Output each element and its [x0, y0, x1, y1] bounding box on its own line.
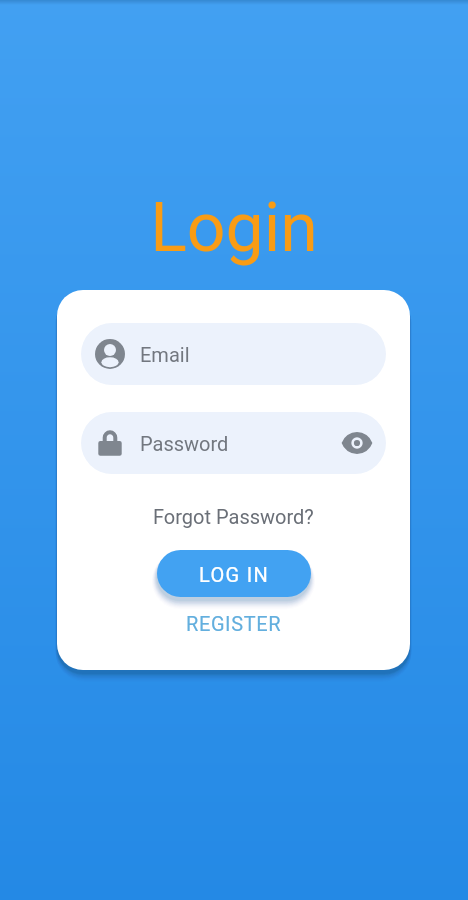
button[interactable]: Show password: [335, 421, 379, 465]
button[interactable]: Password: [81, 412, 386, 474]
staticText: Forgot Password?: [153, 505, 314, 528]
staticText: LOG IN: [199, 563, 269, 586]
staticText: Login: [0, 188, 468, 268]
staticText: Email: [140, 343, 190, 366]
button[interactable]: Forgot Password?: [143, 497, 324, 536]
button[interactable]: LOG IN: [157, 550, 311, 597]
staticText: REGISTER: [186, 612, 282, 635]
button[interactable]: Email: [81, 323, 386, 385]
button[interactable]: REGISTER: [172, 604, 296, 643]
staticText: Password: [140, 432, 229, 455]
